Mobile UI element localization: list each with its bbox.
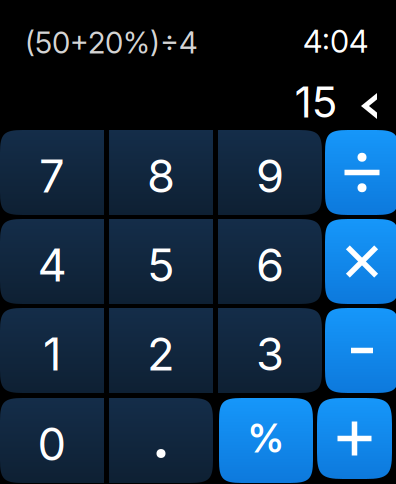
button[interactable]: Multiply [325,219,396,304]
button[interactable]: Divide [325,130,396,215]
staticText: 4 [37,238,66,292]
button[interactable]: 4 [0,219,104,304]
staticText: 1 [43,327,61,381]
button[interactable]: Add [317,398,392,479]
staticText: 4:04 [303,23,368,60]
button[interactable]: 9 [218,130,322,215]
staticText: (50+20%)÷4 [25,25,198,60]
button[interactable]: Subtract [325,308,396,393]
button[interactable]: 7 [0,130,104,215]
button[interactable]: 3 [218,308,322,393]
staticText: % [248,415,284,462]
staticText: 6 [256,238,284,292]
staticText: 2 [147,327,175,381]
button[interactable]: 0 [0,398,104,483]
button[interactable]: 6 [218,219,322,304]
staticText: 8 [147,149,175,203]
staticText: 5 [147,238,175,292]
button[interactable]: Decimal point [109,398,213,483]
button[interactable]: 15 [290,81,342,123]
button[interactable]: 8 [109,130,213,215]
staticText: 15 [294,76,337,128]
button[interactable]: 2 [109,308,213,393]
button[interactable]: Delete [351,83,387,129]
staticText: 0 [37,417,66,471]
button[interactable]: 5 [109,219,213,304]
staticText: 7 [39,149,65,203]
staticText: 9 [256,149,284,203]
button[interactable]: Percent [219,398,313,483]
staticText: 3 [256,327,284,381]
button[interactable]: 1 [0,308,104,393]
